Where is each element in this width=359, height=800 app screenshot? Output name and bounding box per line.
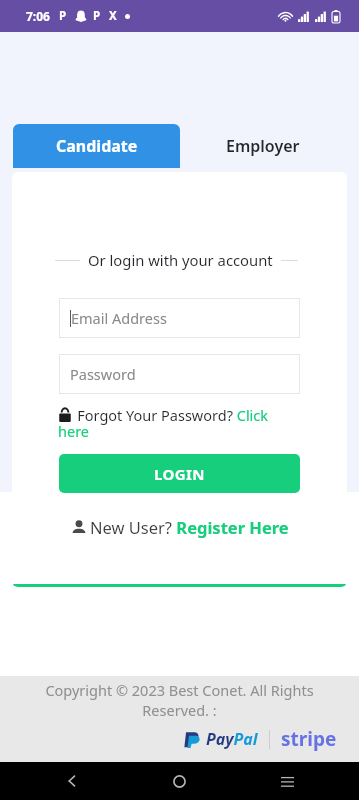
button[interactable]: Forgot Your Password? Click here bbox=[58, 405, 301, 442]
button[interactable]: New User? Register Here bbox=[71, 516, 289, 538]
button[interactable]: Employer bbox=[180, 124, 346, 168]
staticText: Password bbox=[70, 364, 136, 384]
button[interactable]: Home bbox=[125, 762, 233, 800]
button[interactable]: LOGIN bbox=[59, 454, 300, 493]
staticText: Employer bbox=[226, 135, 300, 157]
staticText: P bbox=[93, 8, 101, 24]
staticText: LOGIN bbox=[154, 464, 205, 484]
staticText: Email Address bbox=[71, 308, 167, 328]
staticText: Or login with your account bbox=[88, 250, 273, 270]
staticText: Copyright © 2023 Best Conet. All Rights … bbox=[36, 680, 323, 720]
staticText: 7:06 bbox=[26, 8, 50, 24]
staticText: PayPal bbox=[206, 728, 258, 750]
staticText: New User? Register Here bbox=[90, 516, 289, 538]
staticText: X bbox=[109, 8, 117, 24]
button[interactable]: Recent apps bbox=[233, 762, 341, 800]
button[interactable]: Back bbox=[18, 762, 125, 800]
button[interactable]: Candidate bbox=[13, 124, 180, 168]
staticText: Forgot Your Password? Click here bbox=[58, 405, 301, 442]
staticText: Candidate bbox=[56, 135, 138, 157]
staticText: P bbox=[59, 8, 67, 24]
button[interactable]: Email Address bbox=[59, 298, 300, 338]
staticText: stripe bbox=[281, 726, 337, 752]
button[interactable]: Password bbox=[59, 354, 300, 394]
